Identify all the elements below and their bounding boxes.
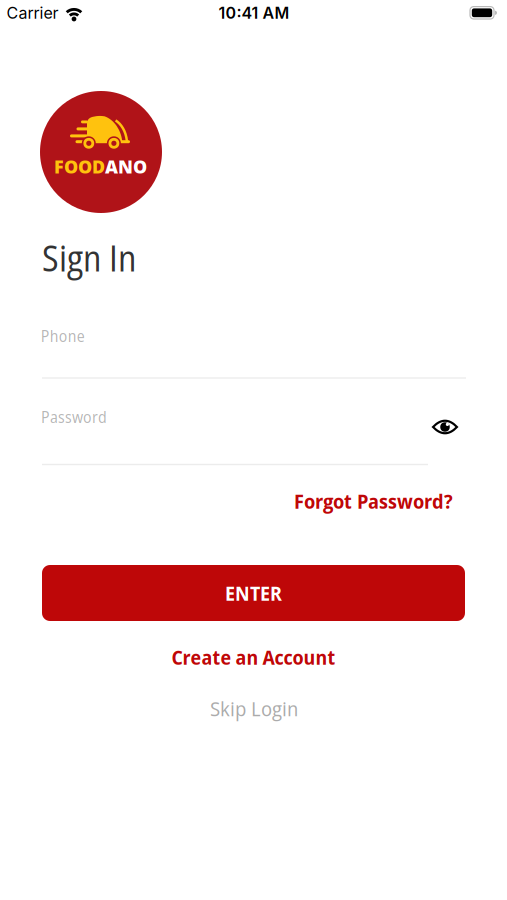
staticText: Create an Account [171, 644, 335, 671]
staticText: Sign In [42, 233, 136, 282]
staticText: Skip Login [210, 694, 298, 722]
button[interactable]: Skip Login [210, 694, 298, 722]
staticText: 10:41 AM [218, 3, 289, 23]
staticText: Carrier [6, 3, 58, 23]
staticText: FOOD [54, 154, 105, 179]
staticText: ANO [105, 154, 147, 179]
button[interactable]: Show password [431, 417, 459, 437]
staticText: ENTER [225, 579, 282, 607]
staticText: Forgot Password? [294, 487, 453, 514]
staticText: Phone [41, 325, 85, 347]
button[interactable]: Create an Account [171, 644, 335, 671]
button[interactable]: ENTER [42, 565, 465, 621]
button[interactable]: Forgot Password? [294, 487, 453, 514]
staticText: Password [41, 406, 107, 428]
